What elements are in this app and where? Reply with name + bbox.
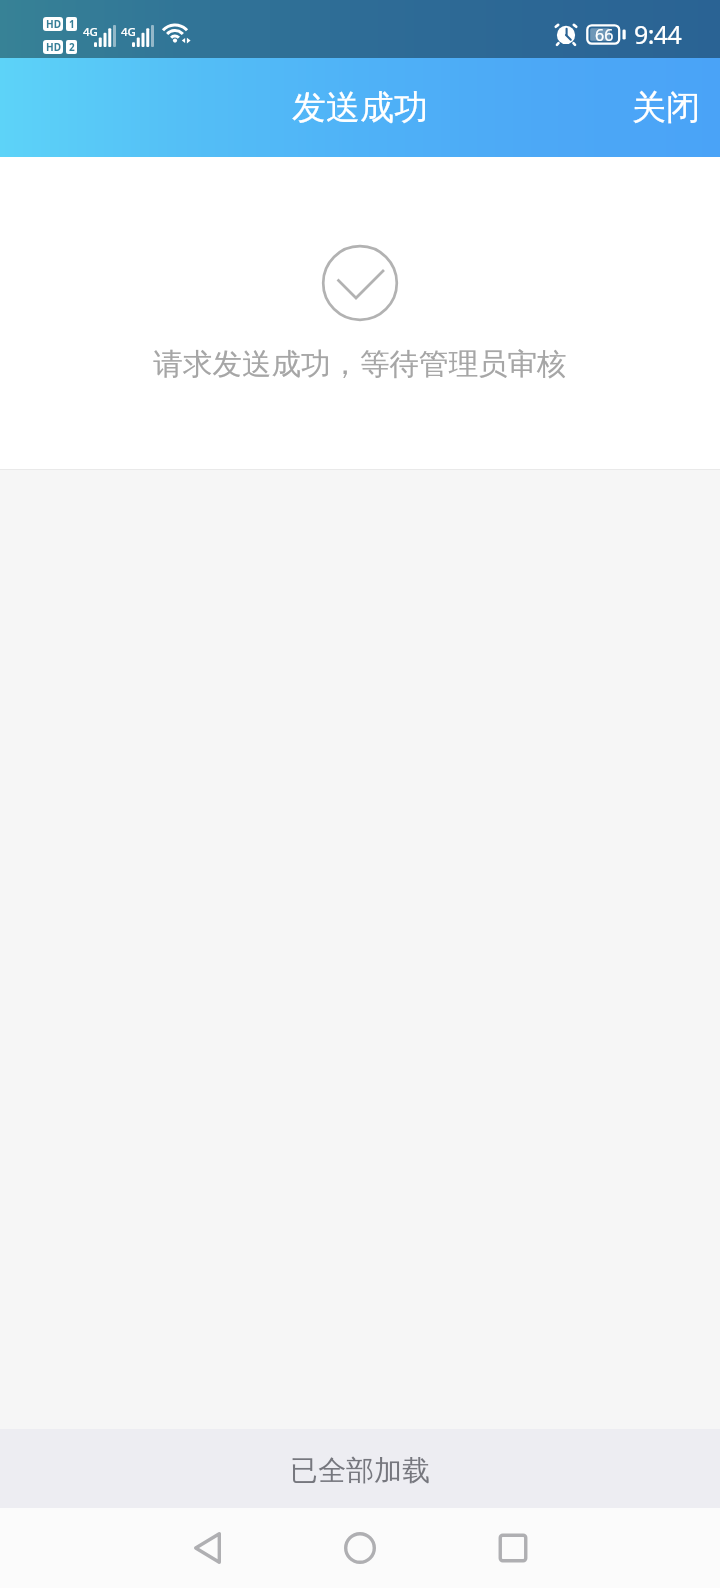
staticText: 9:44	[634, 17, 682, 51]
staticText: 1	[69, 17, 75, 31]
button[interactable]: Home	[330, 1508, 390, 1588]
staticText: 已全部加载	[290, 1453, 430, 1488]
staticText: 请求发送成功，等待管理员审核	[0, 346, 720, 383]
staticText: 发送成功	[292, 86, 428, 129]
staticText: HD	[46, 17, 61, 31]
button[interactable]: Recents	[483, 1508, 543, 1588]
staticText: 66	[595, 24, 614, 45]
staticText: 4G	[83, 24, 98, 40]
button[interactable]: 已全部加载	[0, 1429, 720, 1508]
button[interactable]: Back	[177, 1508, 237, 1588]
button[interactable]: 关闭	[610, 58, 720, 157]
staticText: 2	[69, 40, 75, 54]
staticText: 关闭	[632, 86, 700, 129]
staticText: 4G	[121, 24, 136, 40]
staticText: HD	[46, 40, 61, 54]
